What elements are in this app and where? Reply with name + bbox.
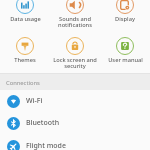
staticText: Themes: [14, 56, 36, 64]
button[interactable]: Flight mode: [0, 135, 150, 150]
staticText: Data usage: [10, 15, 41, 23]
button[interactable]: Display: [100, 0, 150, 26]
button[interactable]: Wi-Fi: [0, 90, 150, 112]
staticText: Wi-Fi: [26, 96, 43, 106]
button[interactable]: User manual: [100, 34, 150, 67]
button[interactable]: Bluetooth: [0, 112, 150, 134]
button[interactable]: Themes: [0, 34, 50, 67]
staticText: Bluetooth: [26, 118, 60, 128]
button[interactable]: Sounds and notifications: [50, 0, 100, 26]
staticText: User manual: [108, 56, 143, 64]
staticText: Lock screen and security: [53, 56, 97, 70]
button[interactable]: Lock screen and security: [50, 34, 100, 67]
staticText: Display: [115, 15, 135, 23]
staticText: Flight mode: [26, 141, 66, 150]
staticText: Sounds and notifications: [58, 15, 92, 29]
button[interactable]: Data usage: [0, 0, 50, 26]
staticText: Connections: [6, 79, 40, 87]
